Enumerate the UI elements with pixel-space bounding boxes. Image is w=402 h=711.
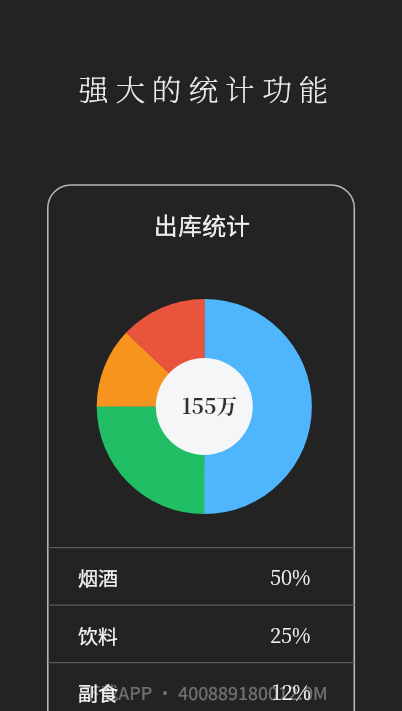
staticText: 155万 xyxy=(159,390,260,420)
button[interactable]: 副食 xyxy=(48,662,355,711)
staticText: 50% xyxy=(270,562,311,591)
staticText: 副食 xyxy=(78,678,118,707)
staticText: 12% xyxy=(272,677,311,706)
staticText: 饮料 xyxy=(78,621,118,650)
staticText: 下载APP • 400889180012.0M xyxy=(4,679,402,705)
button[interactable]: 烟酒 xyxy=(48,547,355,605)
staticText: 25% xyxy=(270,620,311,649)
staticText: 烟酒 xyxy=(78,563,118,592)
staticText: 强大的统计功能 xyxy=(6,67,402,109)
button[interactable]: 饮料 xyxy=(48,605,355,663)
staticText: 出库统计 xyxy=(1,207,402,242)
